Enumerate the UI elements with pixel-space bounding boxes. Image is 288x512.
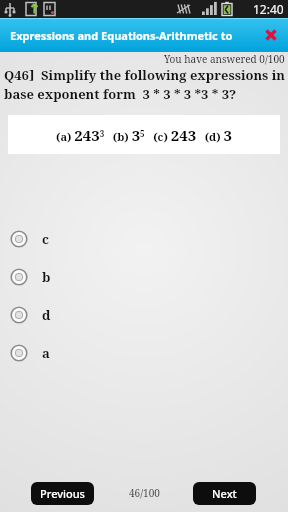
staticText: You have answered 0/100 (164, 52, 285, 66)
button[interactable]: Next (193, 482, 256, 505)
staticText: c (42, 230, 49, 248)
staticText: Q46] Simplify the following expressions … (4, 66, 286, 103)
staticText: Next (212, 486, 237, 501)
staticText: Expressions and Equations-Arithmetic to … (10, 28, 242, 43)
staticText: (a) 2433 (b) 35 (c) 243 (d) 3 (56, 125, 232, 145)
staticText: b (42, 268, 51, 286)
button[interactable]: Previous (31, 482, 94, 505)
staticText: a (42, 344, 50, 362)
staticText: 12:40 (253, 1, 284, 17)
button[interactable]: d (0, 296, 288, 334)
staticText: d (42, 306, 51, 324)
button[interactable]: Close (254, 18, 288, 52)
button[interactable]: b (0, 258, 288, 296)
staticText: Previous (40, 486, 85, 501)
button[interactable]: a (0, 334, 288, 372)
button[interactable]: c (0, 220, 288, 258)
staticText: 46/100 (129, 486, 160, 500)
